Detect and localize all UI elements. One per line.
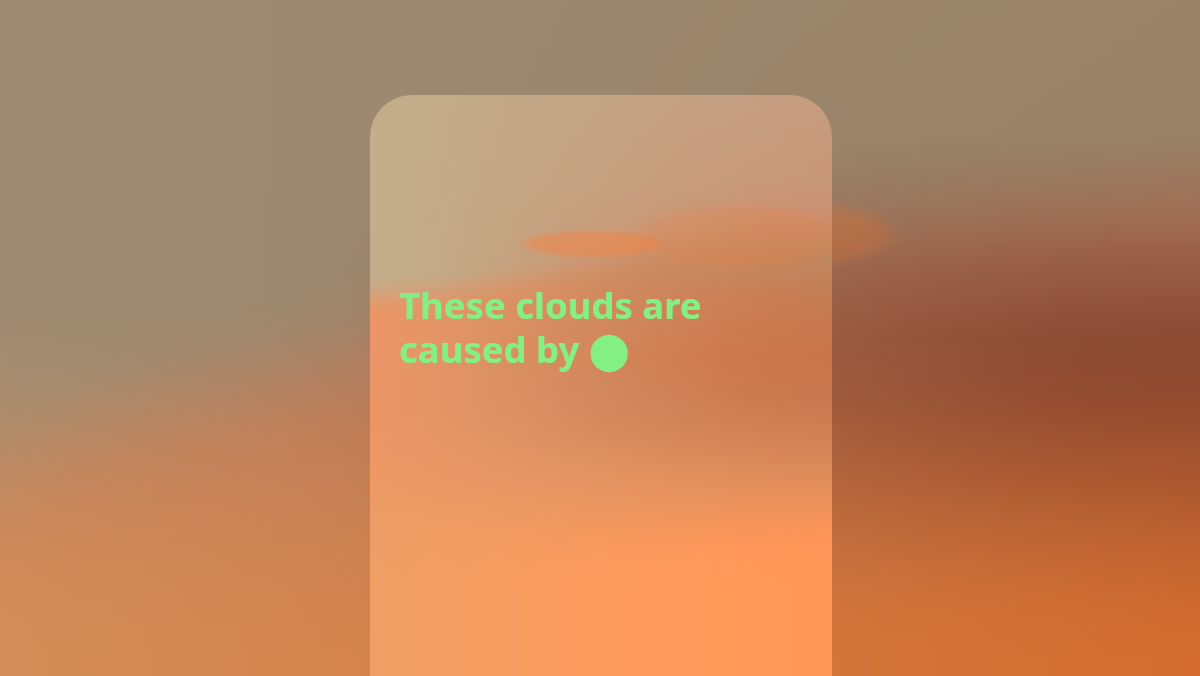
staticText: These clouds are caused by ⬤ bbox=[399, 280, 702, 374]
button[interactable]: These clouds are caused by ⬤ bbox=[370, 95, 832, 676]
